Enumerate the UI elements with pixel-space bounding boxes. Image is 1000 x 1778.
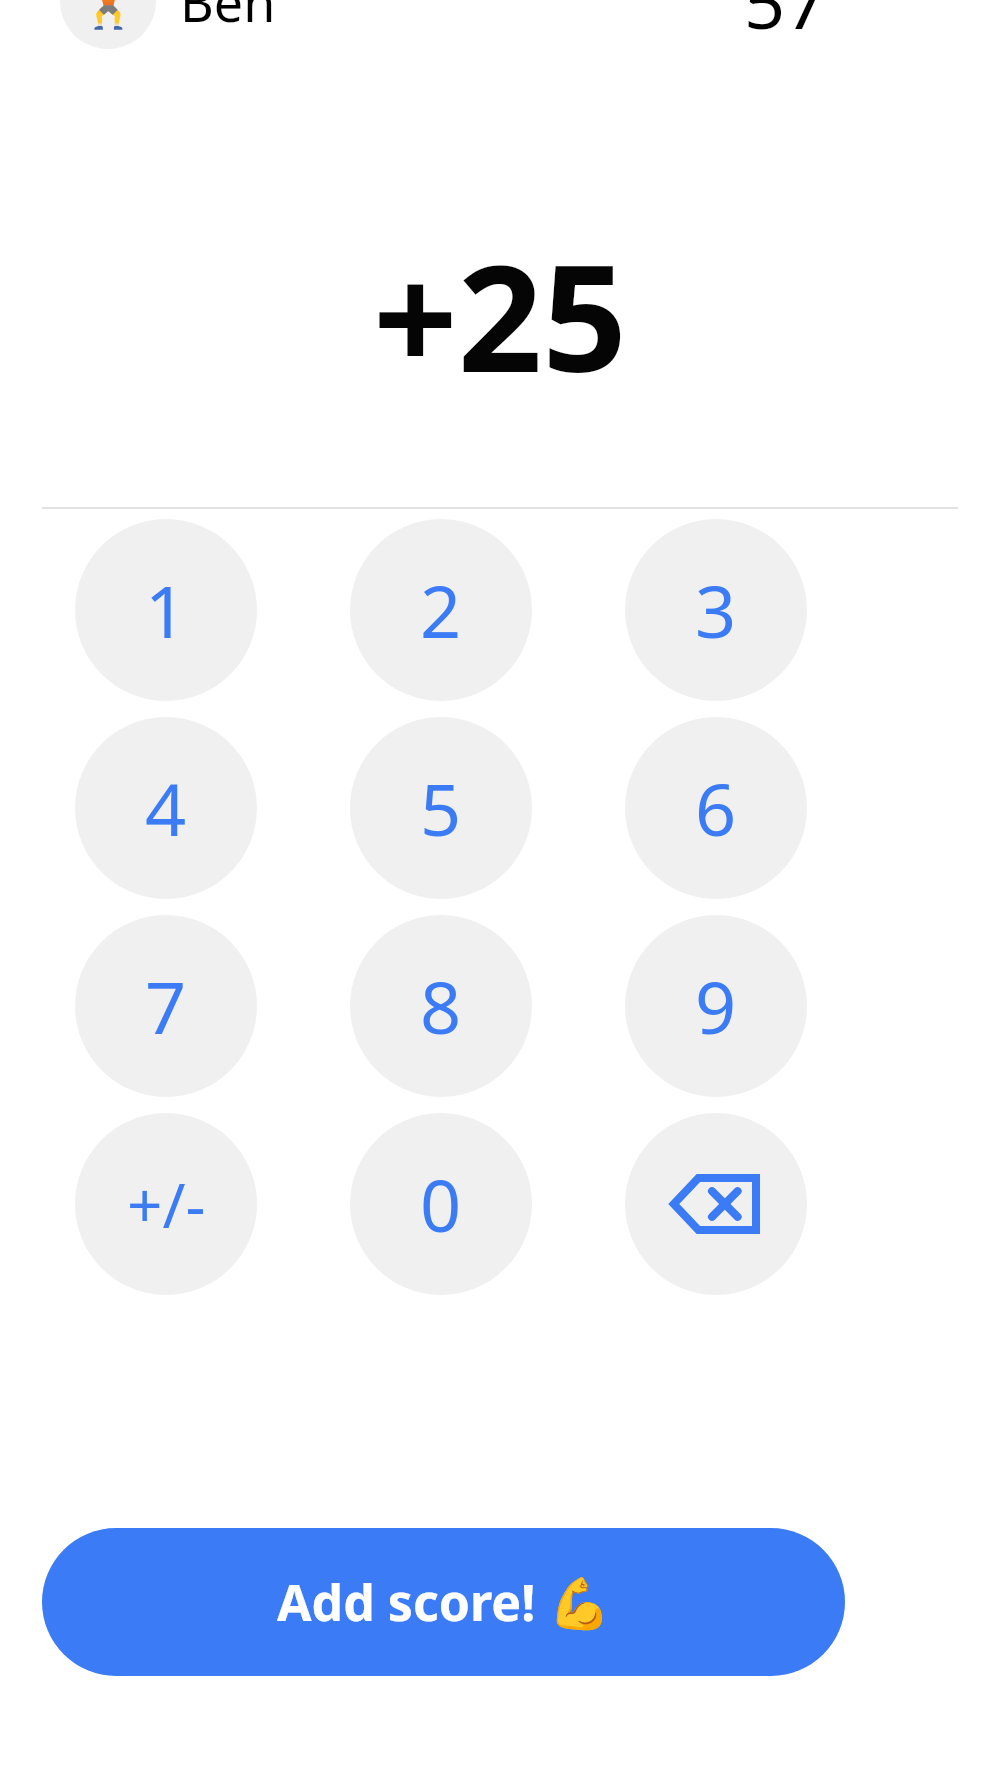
button[interactable]: 5 xyxy=(350,717,532,899)
button[interactable]: 6 xyxy=(625,717,807,899)
staticText: 🏋️ xyxy=(76,0,141,32)
button[interactable]: +/- xyxy=(75,1113,257,1295)
staticText: +/- xyxy=(127,1162,206,1246)
button[interactable]: 8 xyxy=(350,915,532,1097)
staticText: Ben xyxy=(180,0,276,37)
staticText: Add score! 💪 xyxy=(277,1568,611,1636)
staticText: 57 xyxy=(744,0,827,50)
staticText: 0 xyxy=(420,1155,462,1253)
button[interactable]: 9 xyxy=(625,915,807,1097)
staticText: 2 xyxy=(420,561,462,659)
button[interactable]: 3 xyxy=(625,519,807,701)
button[interactable]: 🏋️ xyxy=(42,0,845,62)
staticText: 6 xyxy=(695,759,737,857)
button[interactable]: 1 xyxy=(75,519,257,701)
button[interactable]: 4 xyxy=(75,717,257,899)
staticText: 1 xyxy=(145,561,187,659)
staticText: +25 xyxy=(373,214,627,416)
button[interactable]: Add score! 💪 xyxy=(42,1528,845,1676)
staticText: 7 xyxy=(145,957,187,1055)
button[interactable]: Backspace xyxy=(625,1113,807,1295)
staticText: 3 xyxy=(695,561,737,659)
staticText: 5 xyxy=(420,759,462,857)
staticText: 8 xyxy=(420,957,462,1055)
button[interactable]: 0 xyxy=(350,1113,532,1295)
staticText: 9 xyxy=(695,957,737,1055)
button[interactable]: 7 xyxy=(75,915,257,1097)
staticText: 4 xyxy=(145,759,187,857)
button[interactable]: 2 xyxy=(350,519,532,701)
